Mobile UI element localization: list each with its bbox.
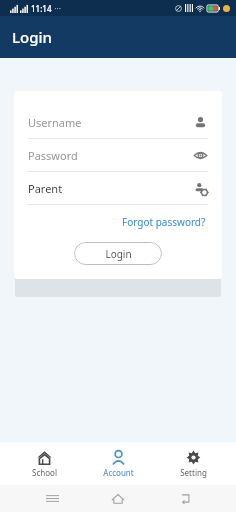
staticText: 11:14 — [31, 3, 52, 14]
staticText: Login — [105, 247, 132, 261]
button[interactable]: Home — [103, 485, 133, 512]
button[interactable]: Password — [28, 139, 208, 171]
staticText: ⋯ — [54, 5, 61, 13]
button[interactable]: Parent — [28, 172, 208, 204]
other: Username — [193, 115, 208, 130]
button[interactable]: Recent apps — [37, 485, 67, 512]
staticText: Account — [103, 467, 134, 478]
button[interactable]: Forgot password? — [120, 212, 208, 232]
button[interactable]: School — [13, 446, 75, 482]
button[interactable]: Username — [28, 106, 208, 138]
staticText: Parent — [28, 181, 193, 196]
button[interactable]: Account — [87, 446, 149, 482]
staticText: Setting — [180, 467, 207, 478]
staticText: Forgot password? — [122, 215, 206, 229]
button[interactable]: Login — [74, 242, 162, 265]
button[interactable]: Back — [170, 485, 200, 512]
staticText: Password — [28, 148, 193, 163]
staticText: Username — [28, 115, 193, 130]
other: Parent — [193, 181, 208, 196]
button[interactable]: Setting — [162, 446, 224, 482]
other: Password — [193, 148, 208, 163]
staticText: School — [32, 467, 57, 478]
staticText: Login — [12, 27, 52, 47]
